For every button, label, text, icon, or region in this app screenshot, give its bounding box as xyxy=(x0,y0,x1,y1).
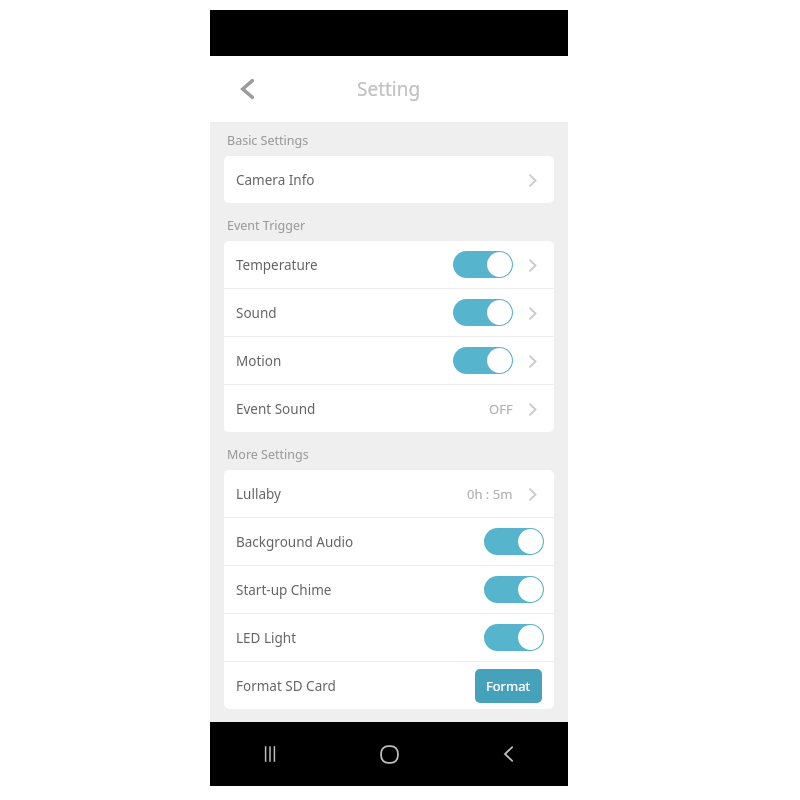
staticText: Start-up Chime xyxy=(236,581,332,599)
button[interactable]: Back xyxy=(449,722,568,786)
staticText: Format SD Card xyxy=(236,677,336,695)
button[interactable]: Background Audio toggle xyxy=(484,528,544,555)
button[interactable]: Format SD Card xyxy=(224,662,554,709)
button[interactable]: Lullaby xyxy=(224,470,554,517)
button[interactable]: Motion xyxy=(224,337,554,384)
button[interactable]: Camera Info xyxy=(224,156,554,203)
staticText: Lullaby xyxy=(236,485,281,503)
button[interactable]: Temperature xyxy=(224,241,554,288)
staticText: Basic Settings xyxy=(227,132,309,149)
staticText: Event Trigger xyxy=(227,217,306,234)
button[interactable]: Start-up Chime toggle xyxy=(484,576,544,603)
button[interactable]: Event Sound xyxy=(224,385,554,432)
button[interactable]: LED Light xyxy=(224,614,554,661)
staticText: 0h : 5m xyxy=(467,485,513,503)
staticText: Setting xyxy=(357,76,421,102)
staticText: Sound xyxy=(236,304,277,322)
button[interactable]: Temperature toggle xyxy=(453,251,513,278)
staticText: OFF xyxy=(489,400,513,418)
staticText: LED Light xyxy=(236,629,297,647)
button[interactable]: Format xyxy=(475,669,542,703)
button[interactable]: Motion toggle xyxy=(453,347,513,374)
staticText: Format xyxy=(486,677,531,695)
button[interactable]: Recent apps xyxy=(210,722,330,786)
staticText: Background Audio xyxy=(236,533,354,551)
staticText: Event Sound xyxy=(236,400,316,418)
staticText: Camera Info xyxy=(236,171,315,189)
button[interactable]: Background Audio xyxy=(224,518,554,565)
button[interactable]: Home xyxy=(330,722,449,786)
button[interactable]: Start-up Chime xyxy=(224,566,554,613)
staticText: More Settings xyxy=(227,446,309,463)
button[interactable]: Sound toggle xyxy=(453,299,513,326)
staticText: Motion xyxy=(236,352,282,370)
button[interactable]: LED Light toggle xyxy=(484,624,544,651)
staticText: Temperature xyxy=(236,256,318,274)
button[interactable]: Sound xyxy=(224,289,554,336)
button[interactable]: Back xyxy=(224,65,272,113)
